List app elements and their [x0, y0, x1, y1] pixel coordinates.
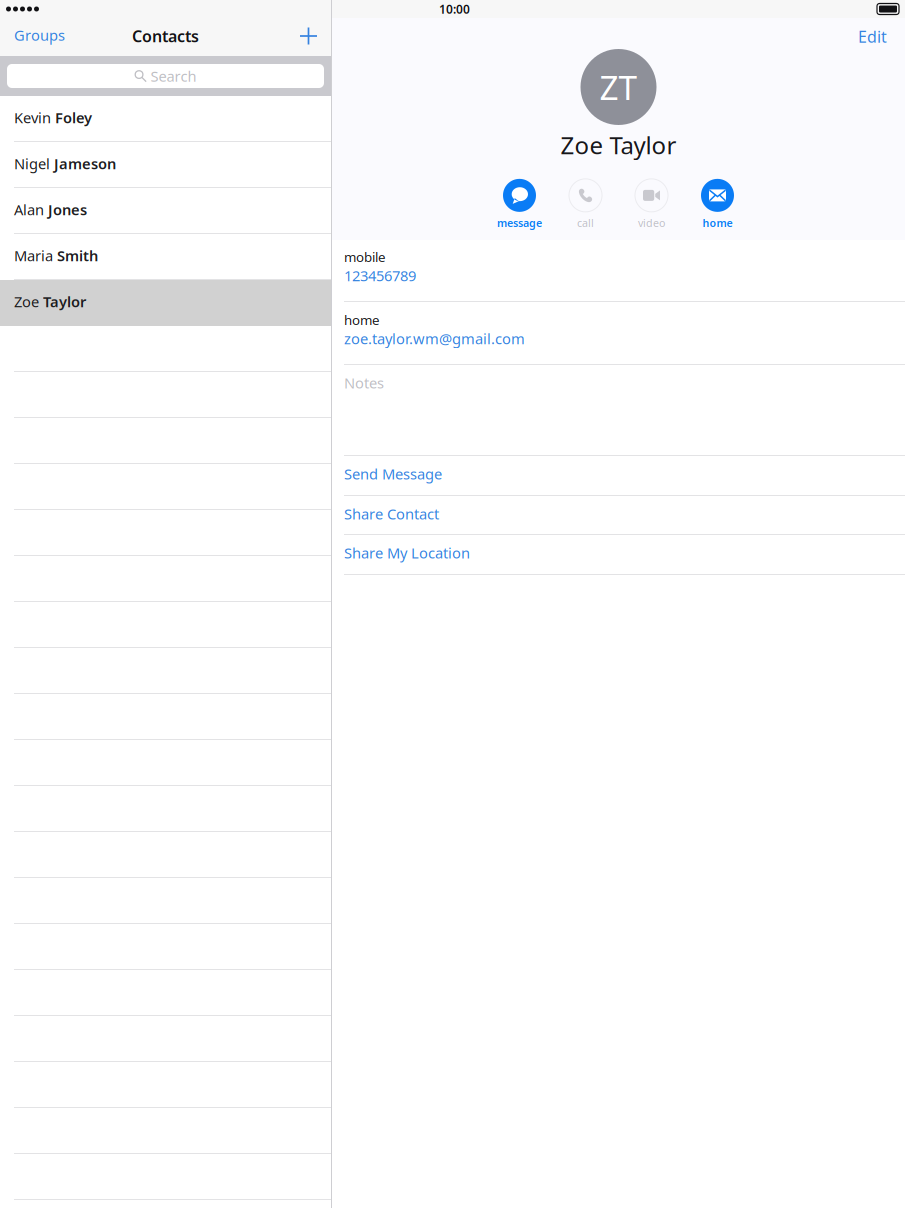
- staticText: Kevin Foley: [14, 108, 92, 127]
- staticText: message: [497, 216, 542, 230]
- staticText: Alan Jones: [14, 200, 87, 219]
- staticText: Share My Location: [344, 543, 470, 562]
- staticText: Maria Smith: [14, 246, 98, 265]
- staticText: Search: [150, 66, 196, 86]
- staticText: call: [577, 216, 594, 230]
- button[interactable]: Share My Location: [332, 535, 905, 575]
- button[interactable]: Groups: [0, 27, 65, 47]
- staticText: mobile: [344, 248, 386, 266]
- staticText: 10:00: [439, 1, 470, 17]
- staticText: zoe.taylor.wm@gmail.com: [344, 329, 525, 348]
- button[interactable]: Zoe Taylor: [0, 280, 331, 326]
- staticText: Notes: [344, 373, 384, 392]
- button[interactable]: Nigel Jameson: [0, 142, 331, 188]
- staticText: Edit: [858, 26, 887, 47]
- staticText: Send Message: [344, 464, 442, 483]
- staticText: Nigel Jameson: [14, 154, 116, 173]
- staticText: Zoe Taylor: [560, 129, 676, 161]
- staticText: Zoe Taylor: [14, 292, 86, 311]
- button[interactable]: Search: [0, 56, 331, 96]
- button[interactable]: Send Message: [332, 456, 905, 496]
- button[interactable]: home: [684, 179, 750, 231]
- staticText: home: [344, 311, 380, 329]
- staticText: home: [702, 216, 732, 230]
- staticText: Groups: [14, 25, 65, 45]
- staticText: ZT: [599, 65, 637, 109]
- button[interactable]: Add contact: [300, 28, 331, 45]
- button[interactable]: Share Contact: [332, 496, 905, 535]
- button[interactable]: Kevin Foley: [0, 96, 331, 142]
- staticText: 123456789: [344, 266, 416, 285]
- button[interactable]: video: [618, 179, 684, 231]
- staticText: video: [638, 216, 665, 230]
- staticText: Contacts: [132, 25, 199, 47]
- button[interactable]: message: [486, 179, 552, 231]
- staticText: Share Contact: [344, 504, 439, 523]
- button[interactable]: call: [552, 179, 618, 231]
- button[interactable]: Maria Smith: [0, 234, 331, 280]
- button[interactable]: Edit: [858, 18, 905, 49]
- button[interactable]: Alan Jones: [0, 188, 331, 234]
